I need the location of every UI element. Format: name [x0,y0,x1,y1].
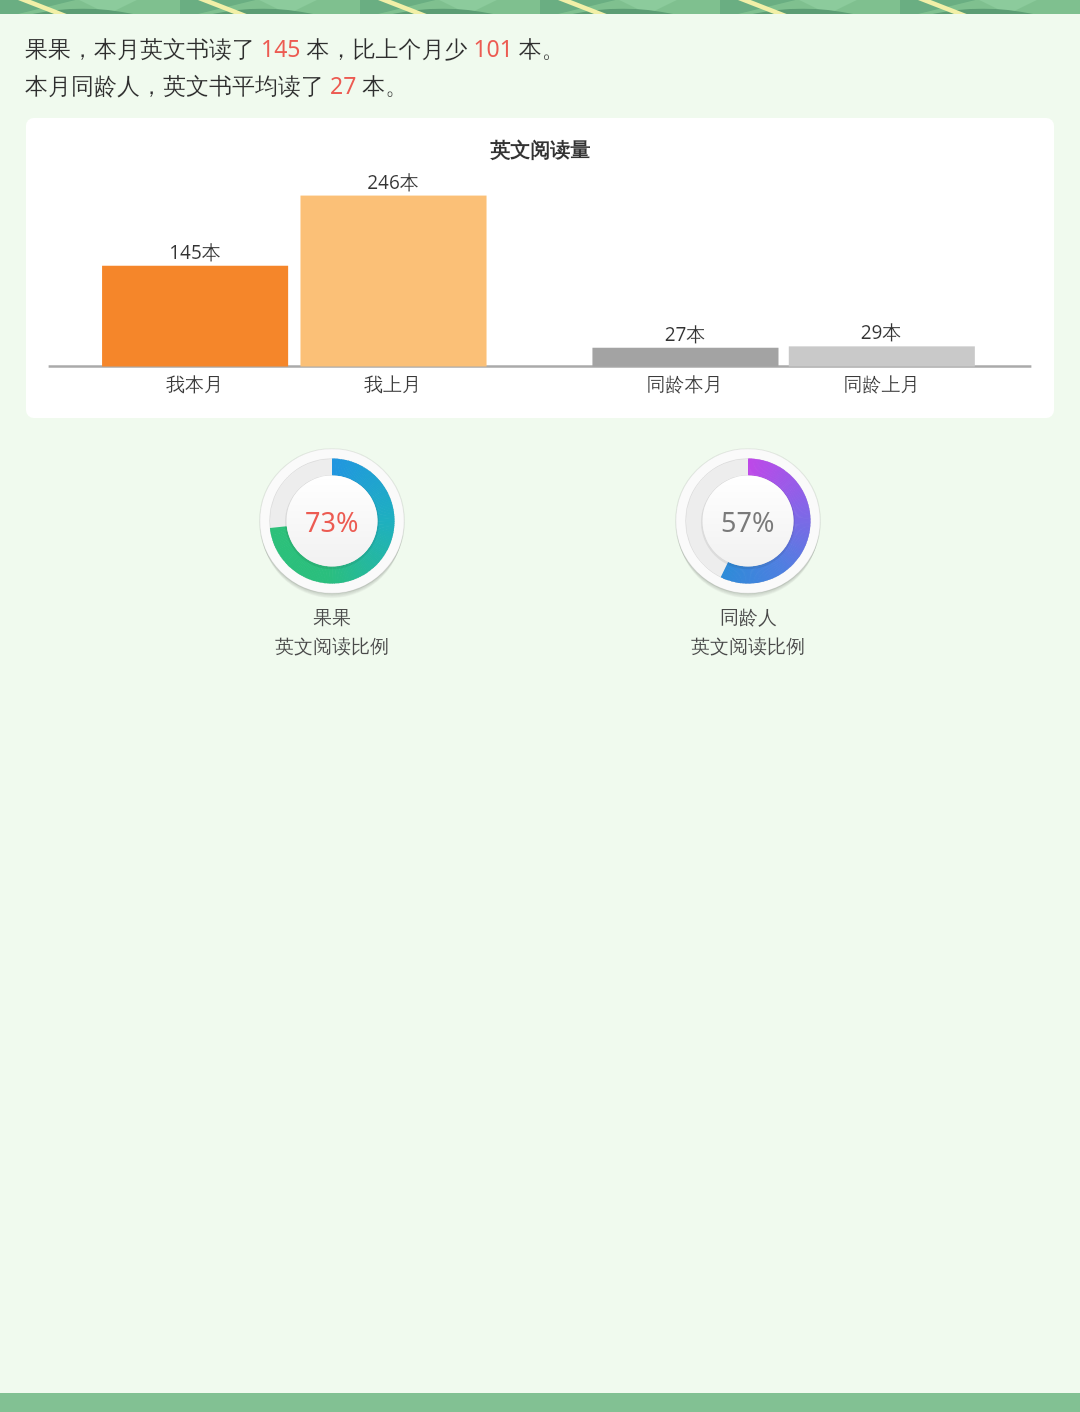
staticText: 同龄上月 [763,373,1000,397]
staticText: 57% [721,503,775,540]
staticText: 英文阅读量 [26,138,1054,163]
staticText: 果果，本月英文书读了 145 本，比上个月少 101 本。 [25,32,565,63]
button[interactable]: 果果 英文阅读比例 73% [247,448,417,659]
staticText: 英文阅读比例 [275,635,389,659]
button[interactable]: 同龄人 英文阅读比例 57% [663,448,833,659]
button[interactable]: 英文阅读量 [26,118,1054,418]
staticText: 同龄人 [720,606,777,630]
staticText: 英文阅读比例 [691,635,805,659]
staticText: 246本 [300,169,486,194]
staticText: 我本月 [76,373,313,397]
staticText: 同龄本月 [566,373,803,397]
staticText: 27本 [592,321,778,346]
staticText: 我上月 [274,373,511,397]
staticText: 果果 [313,606,351,630]
staticText: 145本 [102,239,288,264]
staticText: 29本 [788,319,974,344]
staticText: 本月同龄人，英文书平均读了 27 本。 [25,69,409,100]
staticText: 73% [305,503,359,540]
